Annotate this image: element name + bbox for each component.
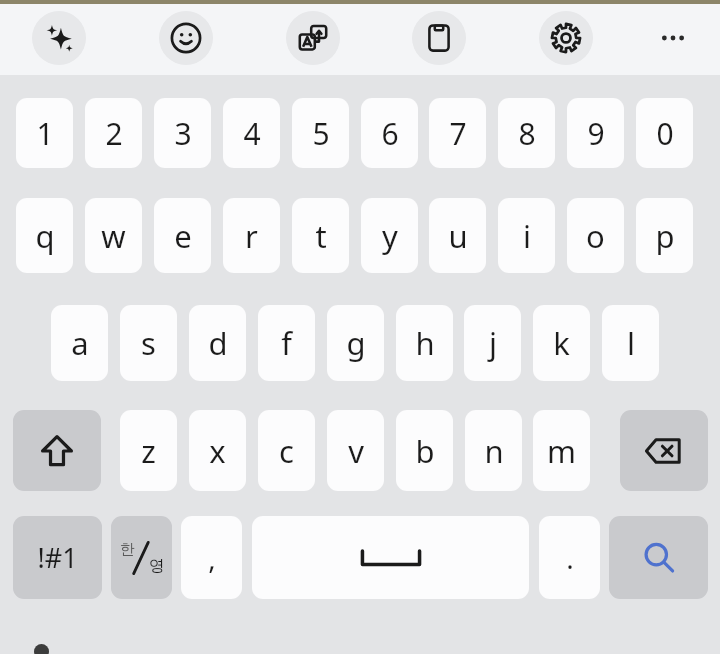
staticText: s [141,322,156,364]
staticText: b [415,430,435,472]
staticText: f [281,322,292,364]
staticText: 8 [518,113,536,154]
button[interactable]: q [16,198,73,273]
staticText: c [279,430,294,472]
button[interactable]: 0 [636,98,693,168]
staticText: 4 [243,113,261,154]
button[interactable]: 1 [16,98,73,168]
button[interactable]: 7 [429,98,486,168]
button[interactable]: b [396,410,453,491]
button[interactable]: Settings [539,11,593,65]
button[interactable]: Backspace [620,410,708,491]
button[interactable]: h [396,305,453,381]
button[interactable]: d [189,305,246,381]
staticText: r [245,215,258,257]
button[interactable]: y [361,198,418,273]
staticText: o [586,215,605,257]
button[interactable]: l [602,305,659,381]
staticText: e [174,215,192,257]
button[interactable]: Korean English toggle [111,516,172,599]
staticText: w [101,215,126,257]
button[interactable]: Shift [13,410,101,491]
staticText: t [315,215,327,257]
button[interactable]: n [465,410,522,491]
button[interactable]: o [567,198,624,273]
staticText: v [348,430,364,472]
staticText: . [566,539,574,577]
button[interactable]: e [154,198,211,273]
button[interactable]: Translate [286,11,340,65]
button[interactable]: m [533,410,590,491]
button[interactable]: t [292,198,349,273]
button[interactable]: , [181,516,242,599]
button[interactable]: w [85,198,142,273]
staticText: k [553,322,570,364]
staticText: q [35,215,55,257]
button[interactable]: More options [646,11,700,65]
staticText: 7 [449,113,467,154]
staticText: 0 [656,113,674,154]
button[interactable]: j [464,305,521,381]
button[interactable]: !#1 [13,516,102,599]
staticText: y [382,215,398,257]
button[interactable]: k [533,305,590,381]
button[interactable]: 6 [361,98,418,168]
staticText: 6 [381,113,399,154]
button[interactable]: Suggestions [32,11,86,65]
staticText: a [71,322,89,364]
button[interactable]: z [120,410,177,491]
button[interactable]: i [498,198,555,273]
staticText: !#1 [37,539,78,576]
staticText: 5 [312,113,330,154]
staticText: 9 [587,113,605,154]
staticText: 한 [120,540,135,559]
button[interactable]: g [327,305,384,381]
button[interactable]: p [636,198,693,273]
button[interactable]: v [327,410,384,491]
button[interactable]: r [223,198,280,273]
staticText: 2 [105,113,123,154]
button[interactable]: Clipboard [412,11,466,65]
staticText: p [655,215,675,257]
button[interactable]: x [189,410,246,491]
staticText: 영 [149,556,165,576]
button[interactable]: 4 [223,98,280,168]
button[interactable]: f [258,305,315,381]
staticText: , [208,539,216,577]
staticText: l [627,322,635,364]
button[interactable]: 2 [85,98,142,168]
button[interactable]: Search [609,516,708,599]
staticText: j [489,322,497,364]
staticText: 3 [174,113,192,154]
staticText: m [547,430,576,472]
staticText: n [484,430,504,472]
staticText: i [523,215,531,257]
button[interactable]: c [258,410,315,491]
staticText: 1 [36,113,54,154]
button[interactable]: s [120,305,177,381]
button[interactable]: 5 [292,98,349,168]
button[interactable]: 3 [154,98,211,168]
staticText: x [209,430,226,472]
staticText: z [141,430,156,472]
staticText: u [448,215,468,257]
button[interactable]: a [51,305,108,381]
button[interactable]: Space [252,516,529,599]
staticText: d [208,322,228,364]
staticText: h [415,322,435,364]
button[interactable]: 9 [567,98,624,168]
button[interactable]: Emoji [159,11,213,65]
button[interactable]: u [429,198,486,273]
button[interactable]: 8 [498,98,555,168]
button[interactable]: . [539,516,600,599]
staticText: g [346,322,366,364]
